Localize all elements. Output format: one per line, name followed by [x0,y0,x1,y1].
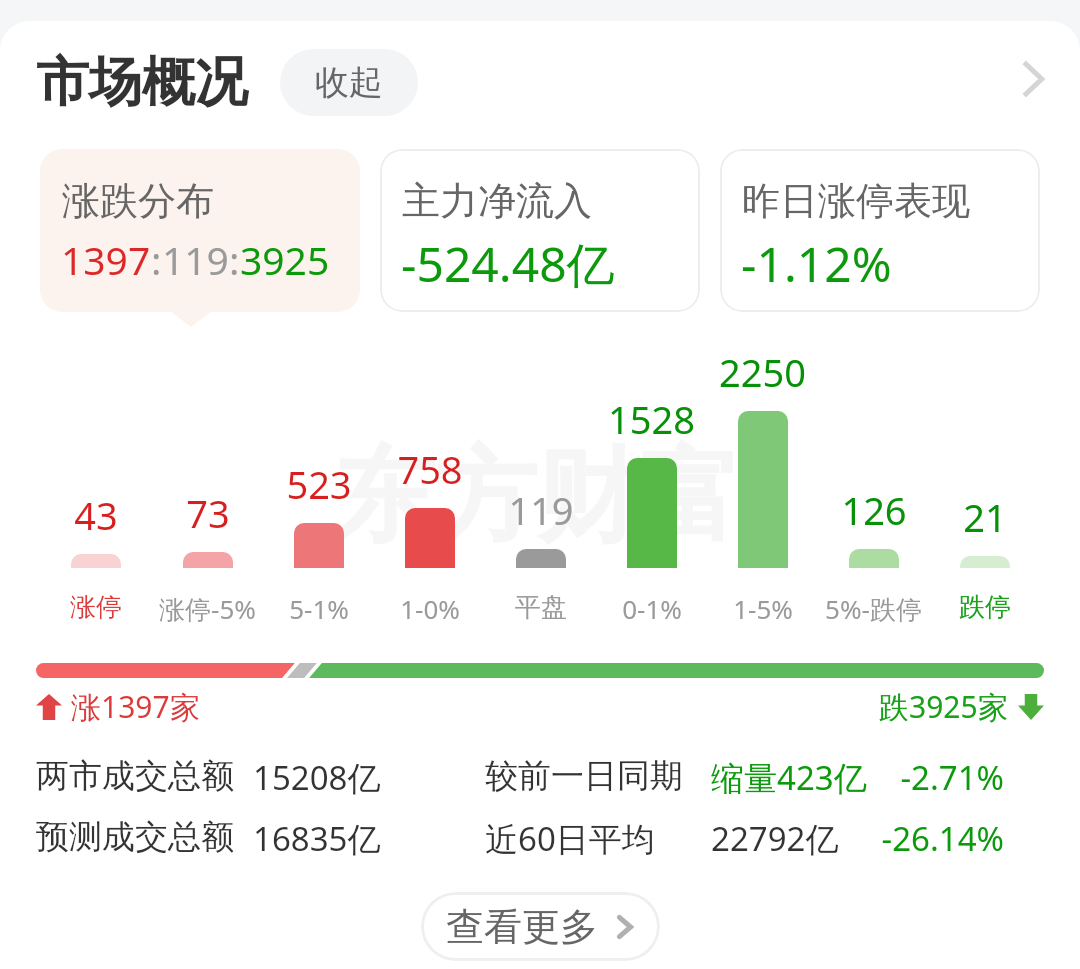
staticText: 主力净流入 [402,177,592,225]
staticText: 两市成交总额 [36,755,234,797]
staticText: 收起 [315,61,383,104]
staticText: : [229,233,240,286]
staticText: 15208亿 [253,755,381,800]
staticText: 16835亿 [253,816,381,861]
staticText: 3925 [240,233,330,286]
staticText: 涨停 [70,591,122,624]
staticText: -2.71% [900,755,1004,800]
button[interactable]: 收起 [280,49,418,116]
button[interactable]: 昨日涨停表现 [720,149,1040,312]
staticText: 跌3925家 [879,686,1008,727]
staticText: 119 [508,484,574,536]
staticText: 73 [186,487,230,539]
staticText: 5%-跌停 [825,591,922,627]
staticText: 跌停 [959,591,1011,624]
staticText: 2250 [719,346,806,398]
staticText: 43 [74,489,118,541]
staticText: 查看更多 [446,903,598,951]
staticText: 较前一日同期 [485,755,683,797]
staticText: 0-1% [622,591,682,626]
staticText: 1-5% [733,591,793,626]
staticText: 523 [286,458,352,510]
staticText: 预测成交总额 [36,816,234,858]
button[interactable]: 查看更多 [421,892,660,961]
staticText: 1397 [61,233,151,286]
staticText: -524.48亿 [401,231,615,297]
staticText: 市场概况 [36,49,248,116]
button[interactable]: 涨跌分布 [40,149,360,312]
staticText: 22792亿 [711,816,839,861]
staticText: 涨停-5% [159,591,256,627]
staticText: 758 [397,443,463,495]
staticText: : [151,233,162,286]
staticText: 平盘 [515,591,567,624]
staticText: 126 [841,484,907,536]
staticText: 1-0% [400,591,460,626]
staticText: 21 [963,491,1007,543]
staticText: 119 [162,233,229,286]
staticText: 东方财富 [333,433,741,561]
button[interactable]: Open market overview [995,41,1071,117]
staticText: 涨跌分布 [62,177,214,225]
staticText: 缩量423亿 [711,755,867,800]
staticText: 涨1397家 [71,686,200,727]
staticText: -1.12% [741,231,892,296]
staticText: 1528 [608,393,695,445]
staticText: 近60日平均 [485,816,655,861]
staticText: 5-1% [289,591,349,626]
staticText: -26.14% [881,816,1004,861]
staticText: 昨日涨停表现 [742,177,970,225]
button[interactable]: 主力净流入 [380,149,700,312]
